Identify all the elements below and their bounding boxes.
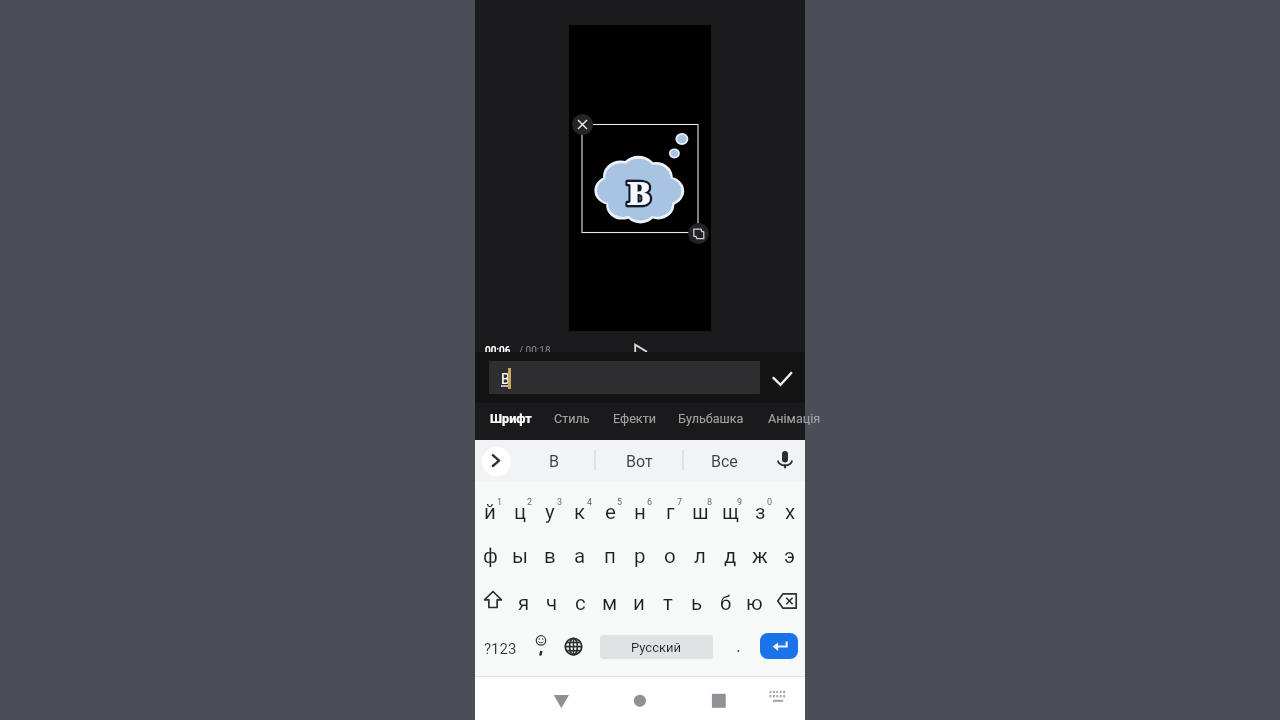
- button[interactable]: Русский: [600, 635, 713, 659]
- button[interactable]: Ефекти: [613, 400, 656, 437]
- button[interactable]: В: [520, 440, 588, 481]
- staticText: 9: [737, 497, 743, 508]
- button[interactable]: х: [775, 481, 805, 528]
- staticText: В: [501, 371, 510, 387]
- button[interactable]: т: [653, 575, 682, 622]
- button[interactable]: л: [685, 528, 715, 575]
- button[interactable]: Switch language: [560, 622, 587, 669]
- staticText: ш: [692, 500, 709, 524]
- button[interactable]: з: [745, 481, 775, 528]
- button[interactable]: к: [565, 481, 595, 528]
- staticText: ч: [546, 591, 558, 615]
- button[interactable]: в: [535, 528, 565, 575]
- button[interactable]: Backspace: [769, 575, 805, 622]
- button[interactable]: Delete sticker: [572, 114, 593, 135]
- button[interactable]: Вот: [605, 440, 673, 481]
- staticText: Стиль: [554, 411, 590, 426]
- button[interactable]: Change keyboard: [761, 684, 793, 716]
- button[interactable]: Все: [690, 440, 758, 481]
- button[interactable]: Home: [624, 684, 656, 716]
- button[interactable]: у: [535, 481, 565, 528]
- button[interactable]: Confirm text: [764, 358, 796, 390]
- staticText: ж: [752, 544, 768, 568]
- staticText: к: [574, 500, 586, 524]
- staticText: 4: [587, 497, 593, 508]
- button[interactable]: Hide keyboard: [545, 684, 577, 716]
- button[interactable]: е: [595, 481, 625, 528]
- button[interactable]: м: [595, 575, 624, 622]
- staticText: с: [575, 591, 586, 615]
- staticText: о: [664, 544, 676, 568]
- button[interactable]: More suggestions: [482, 447, 511, 476]
- staticText: у: [545, 500, 555, 524]
- staticText: щ: [722, 500, 739, 524]
- staticText: я: [518, 591, 530, 615]
- staticText: 6: [647, 497, 653, 508]
- staticText: ы: [512, 544, 528, 568]
- button[interactable]: ы: [505, 528, 535, 575]
- staticText: э: [784, 544, 796, 568]
- staticText: 2: [527, 497, 533, 508]
- button[interactable]: р: [625, 528, 655, 575]
- button[interactable]: Emoji and comma: [527, 622, 555, 669]
- button[interactable]: ?123: [475, 622, 525, 669]
- staticText: 7: [677, 497, 683, 508]
- button[interactable]: Стиль: [554, 400, 590, 437]
- staticText: б: [720, 591, 732, 615]
- button[interactable]: ч: [538, 575, 566, 622]
- button[interactable]: а: [565, 528, 595, 575]
- staticText: в: [544, 544, 556, 568]
- staticText: 3: [557, 497, 563, 508]
- staticText: Вот: [626, 452, 653, 471]
- button[interactable]: В: [489, 361, 760, 394]
- button[interactable]: щ: [715, 481, 745, 528]
- button[interactable]: ш: [685, 481, 715, 528]
- button[interactable]: д: [715, 528, 745, 575]
- staticText: / 00:18: [519, 345, 551, 352]
- staticText: В: [549, 452, 559, 471]
- button[interactable]: ь: [682, 575, 711, 622]
- button[interactable]: Shift: [475, 575, 510, 622]
- staticText: м: [602, 591, 618, 615]
- button[interactable]: э: [775, 528, 805, 575]
- staticText: н: [634, 500, 646, 524]
- staticText: п: [604, 544, 616, 568]
- staticText: й: [484, 500, 496, 524]
- staticText: B: [627, 170, 651, 215]
- button[interactable]: и: [624, 575, 653, 622]
- staticText: Бульбашка: [678, 411, 744, 426]
- staticText: и: [633, 591, 645, 615]
- button[interactable]: г: [655, 481, 685, 528]
- button[interactable]: Enter: [760, 633, 798, 659]
- staticText: а: [574, 544, 586, 568]
- button[interactable]: с: [566, 575, 595, 622]
- staticText: х: [785, 500, 796, 524]
- button[interactable]: н: [625, 481, 655, 528]
- button[interactable]: п: [595, 528, 625, 575]
- button[interactable]: Recent apps: [703, 684, 735, 716]
- staticText: Шрифт: [490, 411, 532, 426]
- staticText: ф: [483, 544, 498, 568]
- button[interactable]: б: [711, 575, 740, 622]
- staticText: ю: [746, 591, 763, 615]
- button[interactable]: Шрифт: [490, 400, 532, 437]
- button[interactable]: ж: [745, 528, 775, 575]
- button[interactable]: Voice input: [773, 440, 797, 481]
- staticText: 5: [617, 497, 623, 508]
- button[interactable]: Resize sticker: [688, 223, 709, 244]
- button[interactable]: я: [510, 575, 538, 622]
- button[interactable]: о: [655, 528, 685, 575]
- button[interactable]: ю: [740, 575, 769, 622]
- button[interactable]: ф: [475, 528, 505, 575]
- button[interactable]: ц: [505, 481, 535, 528]
- button[interactable]: Анімація: [768, 400, 821, 437]
- button[interactable]: .: [723, 622, 753, 669]
- staticText: д: [724, 544, 737, 568]
- staticText: .: [736, 635, 741, 656]
- staticText: г: [666, 500, 675, 524]
- staticText: B: [627, 170, 651, 215]
- staticText: ь: [691, 591, 703, 615]
- staticText: л: [694, 544, 706, 568]
- button[interactable]: Бульбашка: [678, 400, 744, 437]
- button[interactable]: й: [475, 481, 505, 528]
